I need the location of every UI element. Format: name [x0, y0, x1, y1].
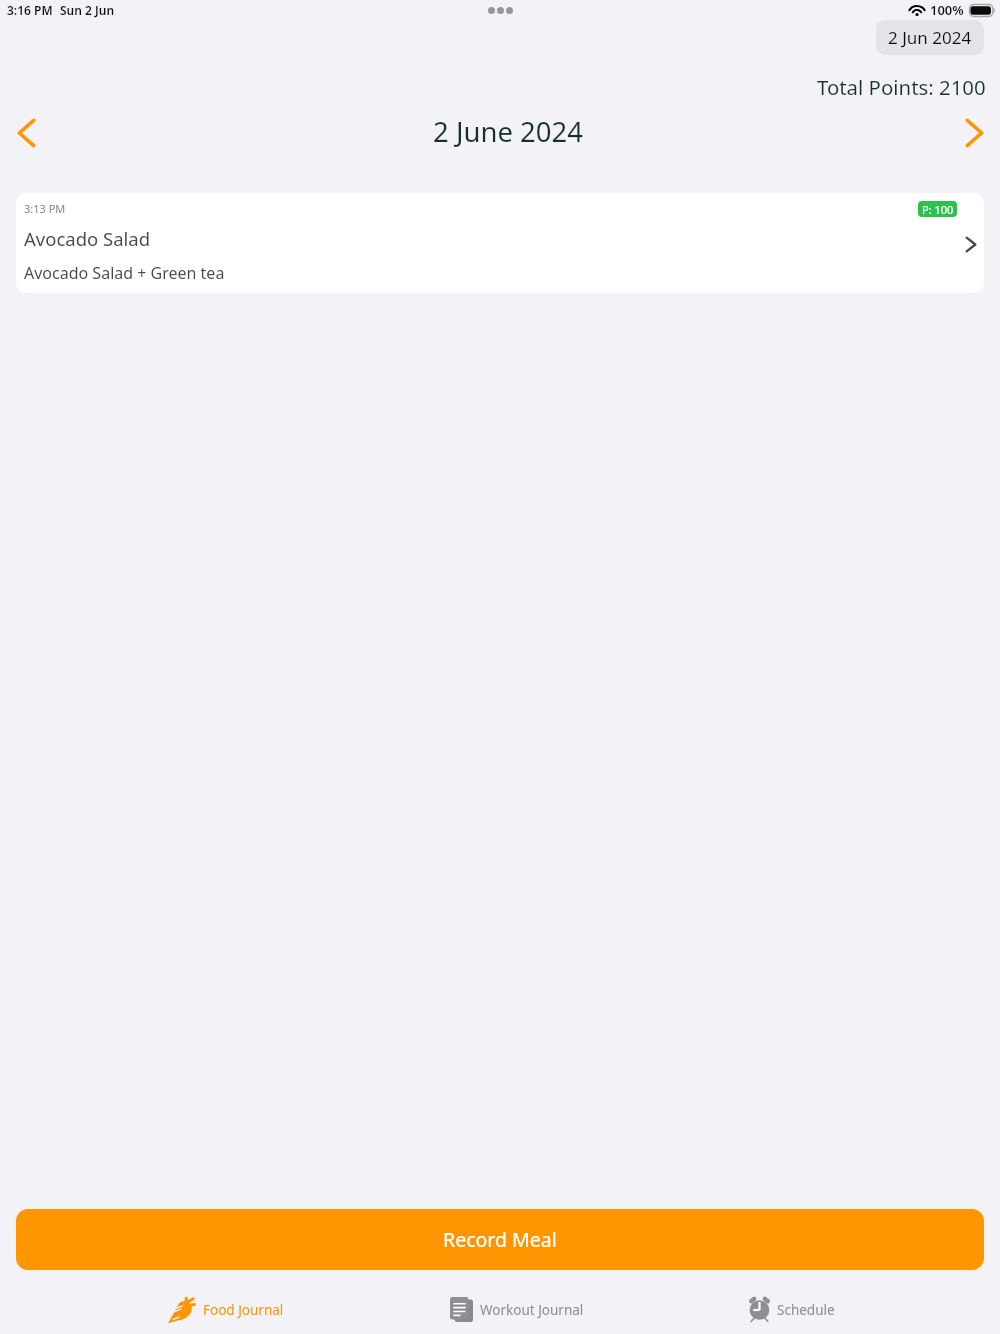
button[interactable]: 2 Jun 2024 — [876, 20, 984, 55]
staticText: Sun 2 Jun — [60, 2, 115, 18]
staticText: P: 100 — [922, 202, 954, 217]
staticText: Record Meal — [443, 1226, 557, 1253]
staticText: Workout Journal — [480, 1301, 584, 1319]
button[interactable]: Food Journal — [165, 1287, 284, 1332]
staticText: Avocado Salad + Green tea — [24, 262, 225, 284]
button[interactable]: Previous day — [0, 107, 52, 159]
staticText: 2 June 2024 — [433, 113, 583, 150]
staticText: Food Journal — [203, 1301, 284, 1319]
staticText: Avocado Salad — [24, 226, 151, 251]
button[interactable]: Workout Journal — [450, 1287, 584, 1332]
button[interactable]: Next day — [948, 107, 1000, 159]
staticText: 100% — [930, 1, 964, 19]
staticText: 2 Jun 2024 — [888, 26, 972, 49]
button[interactable]: Record Meal — [16, 1209, 984, 1270]
staticText: Total Points: 2100 — [817, 73, 986, 101]
button[interactable]: 3:13 PM — [16, 193, 984, 293]
staticText: Schedule — [777, 1301, 835, 1319]
staticText: 3:16 PM — [7, 2, 53, 18]
button[interactable]: Schedule — [749, 1287, 835, 1332]
staticText: 3:13 PM — [24, 201, 66, 216]
